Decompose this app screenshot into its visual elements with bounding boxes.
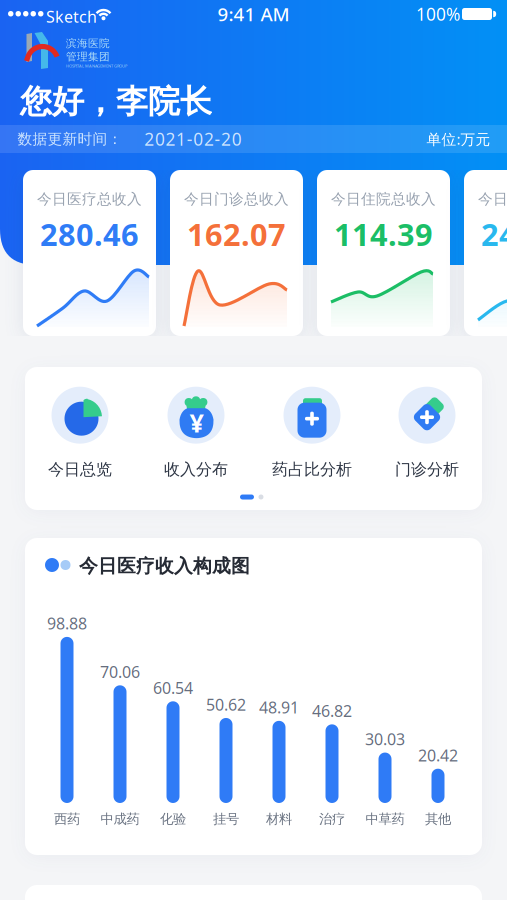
staticText: 60.54	[153, 677, 193, 698]
staticText: 治疗	[319, 811, 345, 827]
staticText: 今日医疗总收入	[37, 190, 142, 208]
staticText: 280.46	[40, 214, 139, 254]
staticText: 114.39	[334, 214, 433, 254]
staticText: 中草药	[365, 811, 404, 827]
staticText: 46.82	[312, 700, 352, 721]
staticText: 48.91	[259, 697, 299, 718]
button[interactable]: 今日医疗总收入	[23, 170, 156, 336]
button[interactable]: 今日手术总收入	[464, 170, 507, 336]
staticText: 今日住院总收入	[331, 190, 436, 208]
staticText: 50.62	[206, 694, 246, 715]
staticText: HOSPITAL MANAGEMENT GROUP	[66, 63, 127, 68]
staticText: 材料	[266, 811, 292, 827]
staticText: 您好，李院长	[20, 82, 212, 121]
button[interactable]: 今日住院总收入	[317, 170, 450, 336]
staticText: 2021-02-20	[144, 127, 242, 150]
staticText: 今日手术总收入	[478, 190, 507, 208]
button[interactable]: 门诊分析	[395, 387, 459, 479]
button[interactable]: ¥	[164, 387, 228, 479]
staticText: 今日门诊总收入	[184, 190, 289, 208]
staticText: 西药	[54, 811, 80, 827]
staticText: 收入分布	[164, 460, 228, 479]
staticText: 其他	[425, 811, 451, 827]
staticText: 70.06	[100, 661, 140, 682]
button[interactable]: 今日门诊总收入	[170, 170, 303, 336]
staticText: 245.18	[481, 214, 507, 254]
button[interactable]: 药占比分析	[272, 387, 352, 479]
staticText: ¥	[189, 406, 203, 439]
staticText: 98.88	[47, 613, 87, 634]
staticText: 管理集团	[66, 50, 110, 63]
staticText: Sketch	[46, 6, 97, 27]
staticText: 今日总览	[48, 460, 112, 479]
staticText: 20.42	[418, 745, 458, 766]
staticText: 单位:万元	[426, 129, 490, 149]
staticText: 药占比分析	[272, 460, 352, 479]
staticText: 化验	[160, 811, 186, 827]
staticText: 今日医疗收入构成图	[79, 554, 250, 577]
staticText: 9:41 AM	[217, 2, 289, 26]
staticText: 挂号	[213, 811, 239, 827]
staticText: 100%	[416, 2, 460, 25]
staticText: 数据更新时间：	[17, 130, 122, 148]
staticText: 门诊分析	[395, 460, 459, 479]
button[interactable]: 今日总览	[48, 387, 112, 479]
staticText: 162.07	[187, 214, 286, 254]
staticText: 30.03	[365, 728, 405, 750]
staticText: 中成药	[100, 811, 139, 827]
staticText: 滨海医院	[66, 37, 110, 50]
